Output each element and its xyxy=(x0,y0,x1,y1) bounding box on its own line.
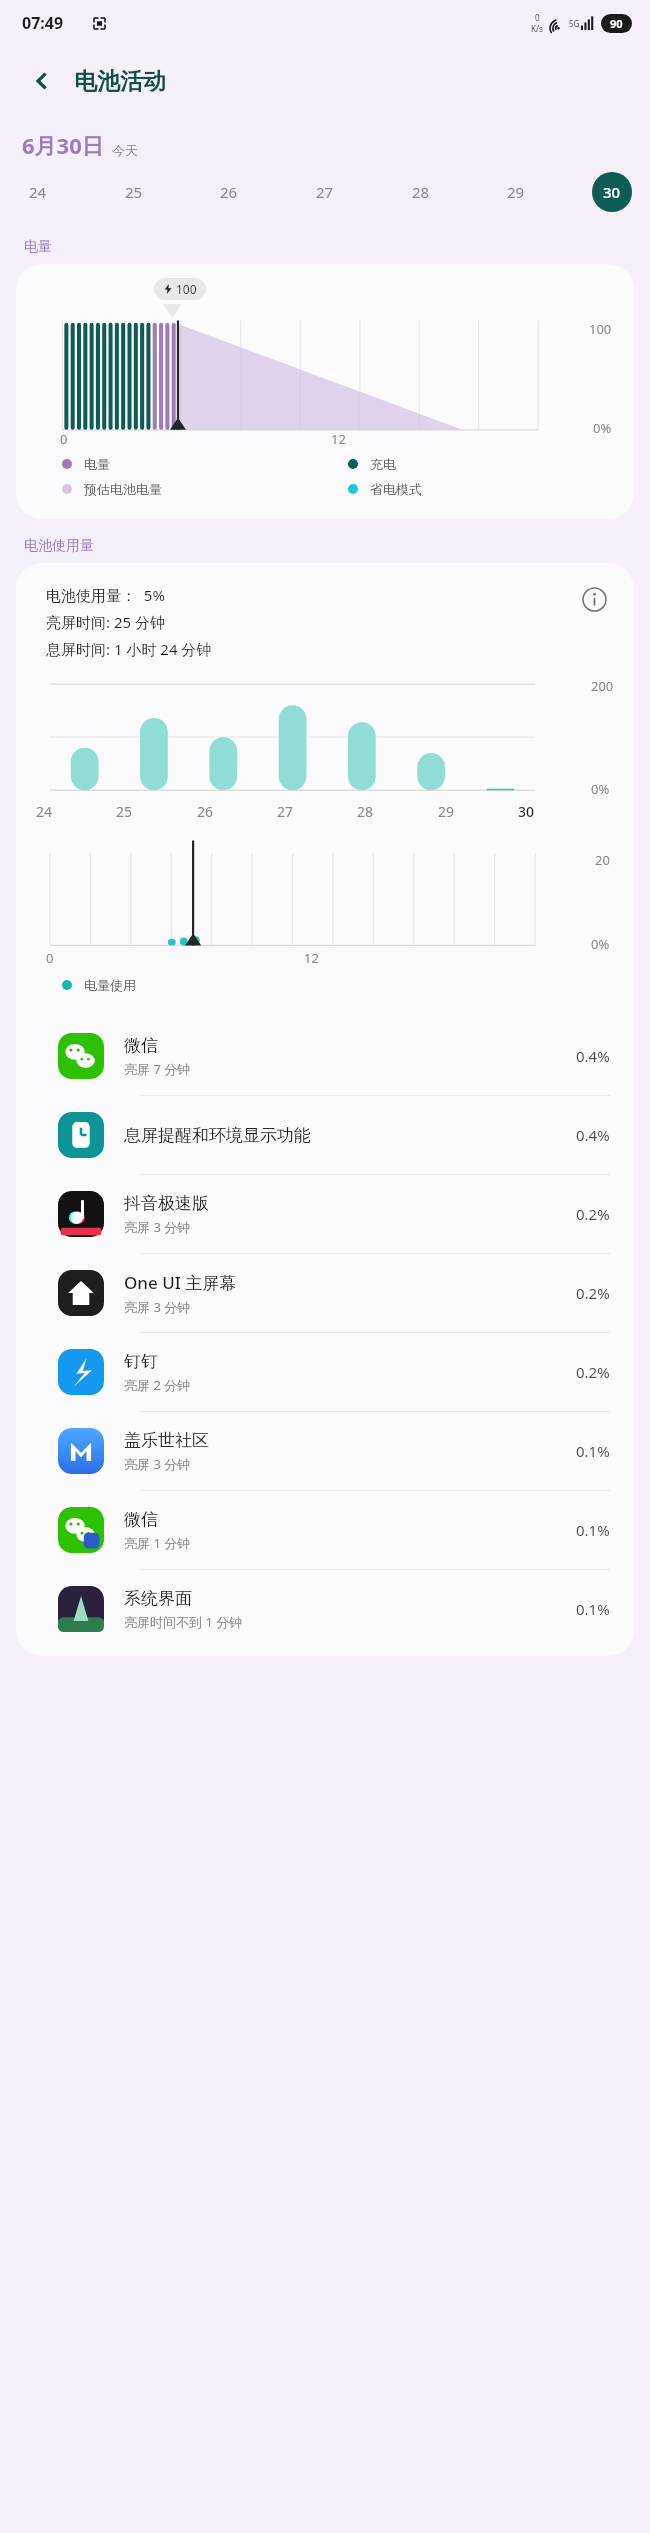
staticText: 07:49 xyxy=(22,12,64,34)
staticText: 5G xyxy=(569,18,580,29)
button[interactable]: Back xyxy=(20,59,64,103)
staticText: 25 xyxy=(125,182,143,202)
staticText: 0.1% xyxy=(576,1520,610,1540)
button[interactable]: 100 xyxy=(16,264,634,519)
staticText: 29 xyxy=(438,802,455,821)
staticText: 0.4% xyxy=(576,1046,610,1066)
staticText: 微信 xyxy=(124,1509,158,1530)
staticText: 28 xyxy=(412,182,430,202)
staticText: K/s xyxy=(531,23,543,34)
staticText: 0.2% xyxy=(576,1204,610,1224)
staticText: 微信 xyxy=(124,1035,158,1056)
staticText: One UI 主屏幕 xyxy=(124,1271,237,1294)
staticText: 6月30日 xyxy=(22,130,104,160)
staticText: 0.4% xyxy=(576,1125,610,1145)
button[interactable]: 微信 xyxy=(16,1017,634,1095)
staticText: 电量 xyxy=(24,238,52,256)
staticText: 电池使用量： 5% xyxy=(46,585,165,605)
button[interactable]: 盖乐世社区 xyxy=(16,1412,634,1490)
staticText: 29 xyxy=(507,182,525,202)
staticText: 0.1% xyxy=(576,1441,610,1461)
button[interactable]: One UI 主屏幕 xyxy=(16,1254,634,1332)
button[interactable]: 29 xyxy=(496,172,536,212)
staticText: 0 xyxy=(46,949,54,967)
staticText: 今天 xyxy=(112,142,138,158)
staticText: 30 xyxy=(603,182,621,202)
button[interactable]: 30 xyxy=(592,172,632,212)
staticText: 25 xyxy=(116,802,133,821)
staticText: 电量 xyxy=(84,456,110,472)
staticText: 24 xyxy=(36,802,53,821)
button[interactable]: 息屏提醒和环境显示功能 xyxy=(16,1096,634,1174)
staticText: 100 xyxy=(176,281,197,297)
staticText: 亮屏 3 分钟 xyxy=(124,1298,191,1316)
staticText: 息屏提醒和环境显示功能 xyxy=(124,1125,311,1146)
staticText: 亮屏 1 分钟 xyxy=(124,1534,191,1552)
staticText: 亮屏 3 分钟 xyxy=(124,1455,191,1473)
staticText: 电池活动 xyxy=(74,67,166,96)
staticText: 息屏时间: 1 小时 24 分钟 xyxy=(46,639,212,659)
staticText: 12 xyxy=(331,430,346,448)
staticText: 12 xyxy=(304,949,319,967)
staticText: 24 xyxy=(29,182,47,202)
staticText: 0.1% xyxy=(576,1599,610,1619)
staticText: 26 xyxy=(197,802,214,821)
button[interactable]: Info xyxy=(572,577,616,621)
staticText: 电池使用量 xyxy=(24,537,94,555)
button[interactable]: 27 xyxy=(305,172,345,212)
staticText: 盖乐世社区 xyxy=(124,1430,209,1451)
staticText: 28 xyxy=(357,802,374,821)
staticText: 亮屏时间不到 1 分钟 xyxy=(124,1613,243,1631)
staticText: 亮屏 3 分钟 xyxy=(124,1218,191,1236)
staticText: 0% xyxy=(591,935,610,953)
button[interactable]: 25 xyxy=(114,172,154,212)
staticText: 亮屏时间: 25 分钟 xyxy=(46,612,165,632)
button[interactable]: 24 xyxy=(18,172,58,212)
button[interactable]: 系统界面 xyxy=(16,1570,634,1648)
staticText: 亮屏 7 分钟 xyxy=(124,1060,191,1078)
staticText: 0% xyxy=(593,419,612,437)
button[interactable]: 28 xyxy=(401,172,441,212)
staticText: 亮屏 2 分钟 xyxy=(124,1376,191,1394)
button[interactable]: 微信 xyxy=(16,1491,634,1569)
staticText: 钉钉 xyxy=(124,1351,158,1372)
staticText: 0% xyxy=(591,780,610,798)
staticText: 30 xyxy=(518,802,535,821)
button[interactable]: 抖音极速版 xyxy=(16,1175,634,1253)
button[interactable]: 钉钉 xyxy=(16,1333,634,1411)
staticText: 预估电池电量 xyxy=(84,481,162,497)
staticText: 100 xyxy=(589,320,612,338)
staticText: 90 xyxy=(610,16,623,31)
staticText: 省电模式 xyxy=(370,481,422,497)
staticText: 27 xyxy=(316,182,334,202)
staticText: 电量使用 xyxy=(84,977,136,993)
staticText: 20 xyxy=(595,851,610,869)
staticText: 0.2% xyxy=(576,1283,610,1303)
staticText: 抖音极速版 xyxy=(124,1193,209,1214)
staticText: 充电 xyxy=(370,456,396,472)
staticText: 0 xyxy=(60,430,68,448)
staticText: 26 xyxy=(220,182,238,202)
staticText: 系统界面 xyxy=(124,1588,192,1609)
button[interactable]: 26 xyxy=(209,172,249,212)
staticText: 0.2% xyxy=(576,1362,610,1382)
staticText: 0 xyxy=(535,12,540,23)
staticText: 27 xyxy=(277,802,294,821)
staticText: 200 xyxy=(591,677,614,695)
